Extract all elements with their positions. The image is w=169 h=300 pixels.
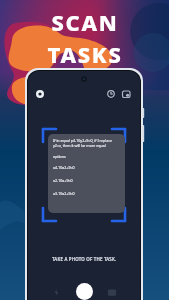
button[interactable]: Open gallery: [106, 286, 118, 298]
staticText: options: [53, 154, 66, 159]
button[interactable]: Take photo: [76, 283, 93, 300]
staticText: a2-10a+9=0: [53, 178, 73, 183]
button[interactable]: Flash: [34, 88, 46, 100]
button[interactable]: Flashlight: [50, 286, 62, 298]
staticText: SCAN: [51, 7, 119, 37]
staticText: If in equal p4-10y2+9=0, if I replace y2…: [53, 138, 120, 148]
button[interactable]: History: [105, 88, 117, 100]
button[interactable]: Gallery: [120, 88, 132, 100]
staticText: a4-10a2+9=0: [53, 165, 75, 170]
staticText: TAKE A PHOTO OF THE TASK.: [52, 256, 117, 262]
staticText: a3-10a2+9=0: [53, 191, 75, 196]
staticText: TASKS: [47, 39, 123, 69]
